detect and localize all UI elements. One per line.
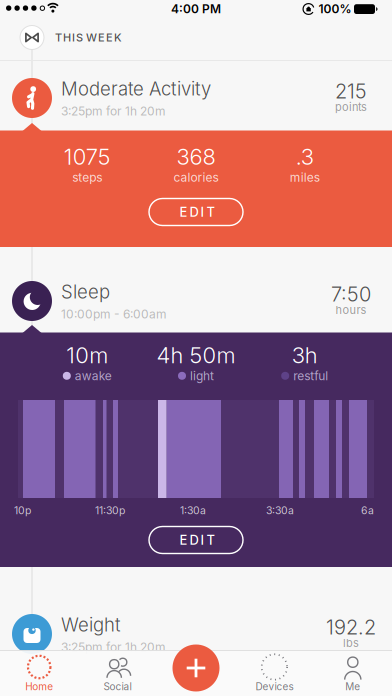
staticText: 10m: [66, 342, 108, 368]
staticText: 3:25pm for 1h 20m: [61, 104, 166, 118]
button[interactable]: Devices: [235, 650, 314, 696]
staticText: 192.2: [326, 615, 376, 639]
staticText: .3: [296, 143, 314, 170]
staticText: 1075: [64, 143, 111, 170]
staticText: Weight: [61, 613, 121, 636]
staticText: 4:00 PM: [171, 2, 221, 16]
button[interactable]: [172, 644, 219, 691]
staticText: 11:30p: [95, 504, 125, 517]
staticText: 7:50: [331, 282, 371, 306]
button[interactable]: E D I T: [149, 198, 243, 225]
staticText: T H I S W E E K: [55, 31, 122, 44]
staticText: awake: [75, 368, 112, 383]
staticText: hours: [335, 303, 366, 317]
button[interactable]: Sleep: [0, 281, 392, 321]
button[interactable]: Me: [314, 650, 392, 696]
button[interactable]: E D I T: [149, 526, 243, 553]
staticText: 6a: [361, 504, 374, 517]
staticText: 3h: [292, 342, 318, 368]
staticText: lbs: [343, 636, 359, 650]
staticText: Moderate Activity: [61, 77, 211, 100]
staticText: 10:00pm - 6:00am: [61, 307, 167, 321]
staticText: steps: [72, 170, 102, 184]
button[interactable]: Home: [0, 650, 78, 696]
staticText: 1:30a: [180, 504, 206, 517]
staticText: E D I T: [179, 532, 214, 548]
staticText: Devices: [255, 680, 293, 693]
staticText: Social: [104, 680, 132, 693]
staticText: light: [190, 368, 214, 383]
button[interactable]: T H I S W E E K: [0, 20, 170, 60]
staticText: 368: [176, 143, 215, 170]
staticText: calories: [173, 170, 218, 184]
staticText: Sleep: [61, 280, 110, 303]
staticText: 3:25pm for 1h 20m: [61, 640, 166, 654]
staticText: 3:30a: [266, 504, 294, 517]
button[interactable]: Weight: [0, 614, 392, 654]
staticText: 215: [335, 79, 367, 103]
button[interactable]: Social: [78, 650, 157, 696]
staticText: Me: [345, 680, 360, 693]
staticText: 100%: [318, 2, 351, 16]
button[interactable]: Moderate Activity: [0, 78, 392, 118]
staticText: 4h 50m: [156, 342, 235, 368]
staticText: restful: [293, 368, 328, 383]
staticText: points: [335, 100, 367, 114]
staticText: Home: [25, 680, 53, 693]
staticText: E D I T: [179, 204, 214, 220]
staticText: 10p: [14, 504, 31, 517]
staticText: miles: [290, 170, 320, 184]
